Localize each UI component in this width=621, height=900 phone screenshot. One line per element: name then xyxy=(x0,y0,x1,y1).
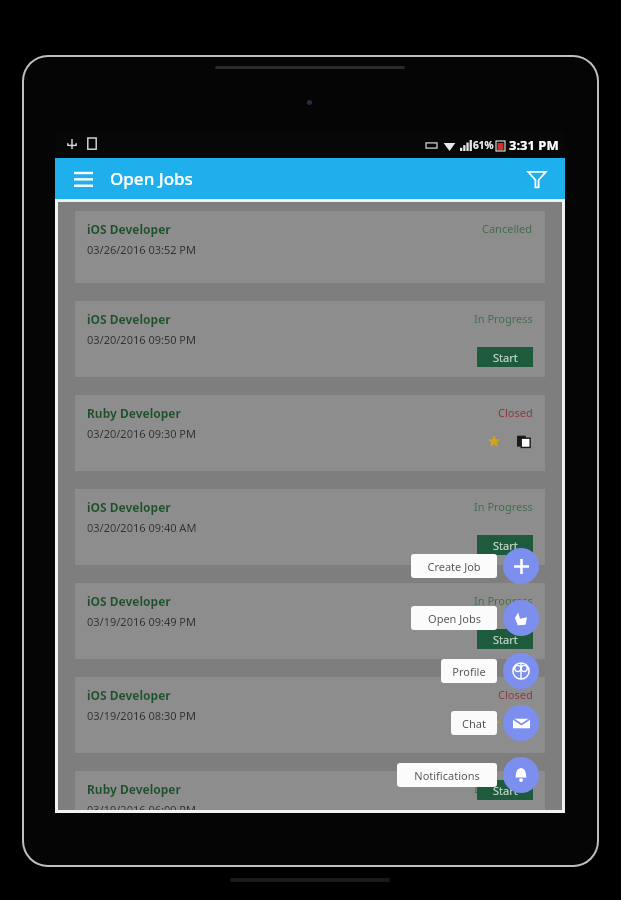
staticText: iOS Developer xyxy=(87,311,171,327)
staticText: Cancelled xyxy=(482,221,533,236)
staticText: Profile xyxy=(452,664,486,679)
button[interactable]: iOS Developer xyxy=(75,583,545,659)
staticText: 03/19/2016 08:30 PM xyxy=(87,708,196,723)
button[interactable]: Open Jobs xyxy=(411,606,497,630)
button[interactable]: iOS Developer xyxy=(75,677,545,753)
button[interactable]: Filter xyxy=(520,162,554,196)
staticText: Start xyxy=(493,632,518,647)
button[interactable]: Start xyxy=(477,535,533,555)
staticText: 03/19/2016 09:49 PM xyxy=(87,614,196,629)
button[interactable]: Favourite xyxy=(485,714,503,732)
staticText: 3:31 PM xyxy=(509,136,559,154)
staticText: In Progress xyxy=(474,593,533,608)
button[interactable]: Copy xyxy=(515,714,533,732)
staticText: 03/26/2016 03:52 PM xyxy=(87,242,196,257)
button[interactable]: Start xyxy=(477,780,533,800)
staticText: Open Jobs xyxy=(110,167,193,190)
button[interactable]: Profile xyxy=(503,653,539,689)
staticText: 03/20/2016 09:30 PM xyxy=(87,426,196,441)
staticText: Notifications xyxy=(414,768,480,783)
button[interactable]: Start xyxy=(477,629,533,649)
staticText: In Progress xyxy=(474,311,533,326)
button[interactable]: iOS Developer xyxy=(75,211,545,283)
staticText: Start xyxy=(493,538,518,553)
button[interactable]: Profile xyxy=(441,659,497,683)
staticText: iOS Developer xyxy=(87,593,171,609)
staticText: Chat xyxy=(462,716,486,731)
button[interactable]: Create Job xyxy=(411,554,497,578)
button[interactable]: Notifications xyxy=(397,763,497,787)
staticText: iOS Developer xyxy=(87,221,171,237)
staticText: Start xyxy=(493,783,518,798)
button[interactable]: Ruby Developer xyxy=(75,395,545,471)
button[interactable]: iOS Developer xyxy=(75,301,545,377)
staticText: Ruby Developer xyxy=(87,781,181,797)
button[interactable]: Ruby Developer xyxy=(75,771,545,810)
button[interactable]: Open Jobs xyxy=(503,600,539,636)
staticText: 03/20/2016 09:50 PM xyxy=(87,332,196,347)
button[interactable]: iOS Developer xyxy=(75,489,545,565)
button[interactable]: Chat xyxy=(503,705,539,741)
staticText: Start xyxy=(493,350,518,365)
button[interactable]: Open navigation menu xyxy=(68,164,98,194)
staticText: iOS Developer xyxy=(87,687,171,703)
button[interactable]: Chat xyxy=(451,711,497,735)
staticText: 03/19/2016 06:00 PM xyxy=(87,802,196,810)
staticText: 61% xyxy=(473,138,494,152)
staticText: Closed xyxy=(498,405,533,420)
staticText: Create Job xyxy=(427,559,481,574)
staticText: In Progress xyxy=(474,499,533,514)
staticText: Open Jobs xyxy=(428,611,481,626)
button[interactable]: Notifications xyxy=(503,757,539,793)
button[interactable]: Favourite xyxy=(485,432,503,450)
button[interactable]: Create Job xyxy=(503,548,539,584)
button[interactable]: Start xyxy=(477,347,533,367)
staticText: In Progress xyxy=(474,781,533,796)
staticText: Ruby Developer xyxy=(87,405,181,421)
staticText: Closed xyxy=(498,687,533,702)
staticText: iOS Developer xyxy=(87,499,171,515)
staticText: 03/20/2016 09:40 AM xyxy=(87,520,197,535)
button[interactable]: Copy xyxy=(515,432,533,450)
